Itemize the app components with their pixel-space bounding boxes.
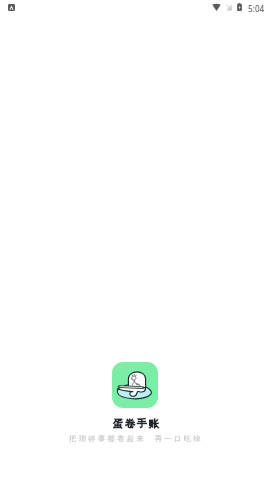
button[interactable]: 蛋卷手账 [112,362,158,408]
staticText: 蛋卷手账 [113,417,161,430]
staticText: 把琐碎事都卷起来 再一口吃掉 [69,433,203,443]
staticText: 5:04 [248,3,265,14]
